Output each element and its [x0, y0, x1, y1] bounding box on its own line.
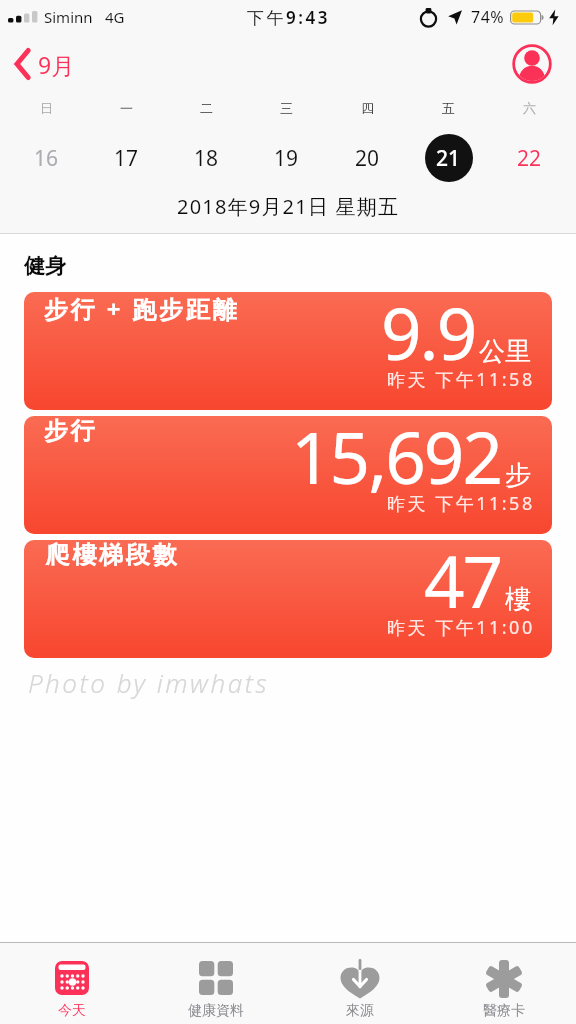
staticText: 步行	[44, 416, 98, 446]
staticText: 9.9	[381, 292, 476, 381]
staticText: 20	[355, 144, 380, 173]
staticText: 一	[120, 100, 133, 116]
staticText: 19	[274, 144, 299, 173]
staticText: 公里	[479, 335, 531, 368]
staticText: Siminn	[44, 7, 93, 27]
staticText: 16	[34, 144, 59, 173]
staticText: 21	[436, 144, 461, 173]
staticText: 昨天 下午11:58	[387, 367, 535, 392]
staticText: 二	[200, 100, 213, 116]
staticText: 來源	[346, 1002, 374, 1020]
button[interactable]: 16	[6, 130, 86, 186]
staticText: 2018年9月21日 星期五	[177, 193, 400, 220]
staticText: 健身	[24, 253, 66, 279]
staticText: 樓	[505, 583, 531, 616]
staticText: 9月	[38, 49, 75, 80]
staticText: 下午9:43	[247, 6, 330, 29]
button[interactable]: 21	[408, 130, 489, 186]
staticText: 步行 + 跑步距離	[44, 292, 240, 325]
staticText: 15,692	[291, 416, 502, 505]
button[interactable]: 步行	[24, 416, 552, 534]
button[interactable]: 20	[327, 130, 408, 186]
staticText: 爬樓梯段數	[44, 540, 178, 570]
staticText: 六	[523, 100, 536, 116]
staticText: 17	[114, 144, 139, 173]
staticText: 醫療卡	[483, 1002, 525, 1020]
button[interactable]: 來源	[288, 943, 432, 1024]
staticText: 健康資料	[188, 1002, 244, 1020]
staticText: 4G	[105, 7, 125, 27]
button[interactable]: 醫療卡	[432, 943, 576, 1024]
button[interactable]: 爬樓梯段數	[24, 540, 552, 658]
staticText: 74%	[471, 6, 505, 28]
staticText: Photo by imwhats	[28, 665, 270, 700]
staticText: 18	[194, 144, 219, 173]
staticText: 47	[424, 540, 502, 629]
button[interactable]	[512, 44, 552, 84]
button[interactable]: 18	[166, 130, 246, 186]
button[interactable]: 健康資料	[144, 943, 288, 1024]
button[interactable]: 步行 + 跑步距離	[24, 292, 552, 410]
staticText: 五	[442, 100, 455, 116]
button[interactable]: 17	[86, 130, 166, 186]
button[interactable]: 19	[246, 130, 327, 186]
button[interactable]: 9月	[14, 48, 75, 80]
staticText: 昨天 下午11:58	[387, 491, 535, 516]
button[interactable]: 22	[489, 130, 570, 186]
staticText: 昨天 下午11:00	[387, 615, 535, 640]
staticText: 步	[505, 459, 531, 492]
button[interactable]: 今天	[0, 943, 144, 1024]
staticText: 今天	[58, 1002, 86, 1020]
staticText: 三	[280, 100, 293, 116]
staticText: 22	[517, 144, 542, 173]
staticText: 四	[361, 100, 374, 116]
staticText: 日	[40, 100, 53, 116]
